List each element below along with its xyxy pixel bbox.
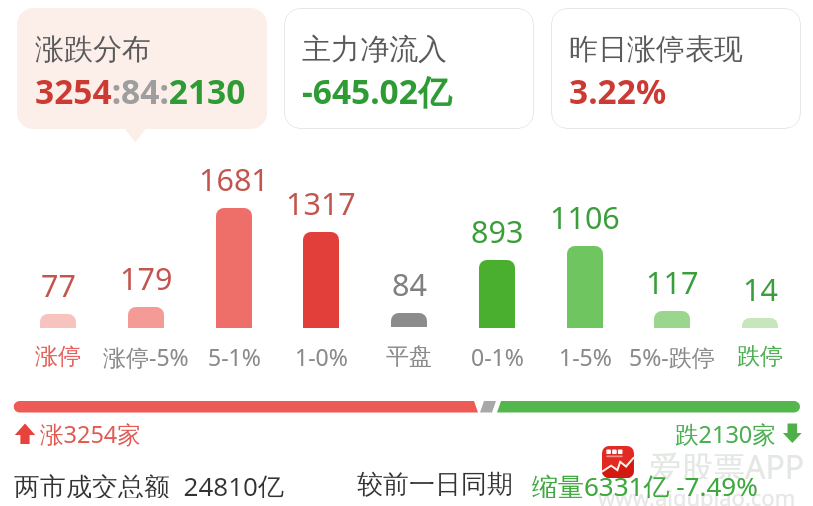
- button[interactable]: [17, 8, 267, 129]
- staticText: 1317: [286, 182, 356, 222]
- staticText: 跌2130家: [675, 418, 776, 448]
- staticText: 14: [743, 268, 778, 308]
- staticText: 缩量6331亿 -7.49%: [532, 468, 758, 498]
- button[interactable]: [716, 160, 804, 370]
- button[interactable]: [541, 160, 629, 370]
- staticText: 117: [646, 261, 699, 301]
- button[interactable]: [102, 160, 190, 370]
- staticText: 平盘: [386, 342, 432, 371]
- button[interactable]: [551, 8, 801, 129]
- staticText: 893: [471, 210, 524, 250]
- staticText: 1681: [199, 158, 269, 198]
- staticText: 0-1%: [471, 341, 524, 372]
- staticText: 1106: [550, 196, 620, 236]
- staticText: 1-5%: [559, 341, 612, 372]
- staticText: 1-0%: [295, 341, 348, 372]
- staticText: 84: [392, 263, 427, 303]
- staticText: 涨跌分布: [35, 31, 151, 68]
- button[interactable]: [628, 160, 716, 370]
- button[interactable]: [14, 160, 102, 370]
- staticText: 昨日涨停表现: [569, 31, 743, 68]
- staticText: -645.02亿: [302, 68, 452, 114]
- button[interactable]: [453, 160, 541, 370]
- staticText: 5-1%: [208, 341, 261, 372]
- staticText: 3254:84:2130: [35, 68, 246, 114]
- button[interactable]: [190, 160, 278, 370]
- button[interactable]: [365, 160, 453, 370]
- staticText: 77: [41, 264, 76, 304]
- staticText: 跌停: [737, 342, 783, 371]
- staticText: 爱股票APP: [649, 445, 805, 479]
- staticText: 3.22%: [569, 68, 667, 114]
- staticText: 两市成交总额 24810亿: [14, 468, 284, 498]
- staticText: 涨停-5%: [103, 341, 189, 372]
- staticText: 5%-跌停: [629, 341, 715, 372]
- staticText: 涨停: [35, 342, 81, 371]
- staticText: 涨3254家: [40, 418, 141, 448]
- staticText: 较前一日同期: [357, 468, 513, 498]
- button[interactable]: [284, 8, 534, 129]
- staticText: 179: [120, 257, 173, 297]
- button[interactable]: [277, 160, 365, 370]
- staticText: www.aigupiao.com: [598, 482, 796, 506]
- staticText: 主力净流入: [302, 31, 447, 68]
